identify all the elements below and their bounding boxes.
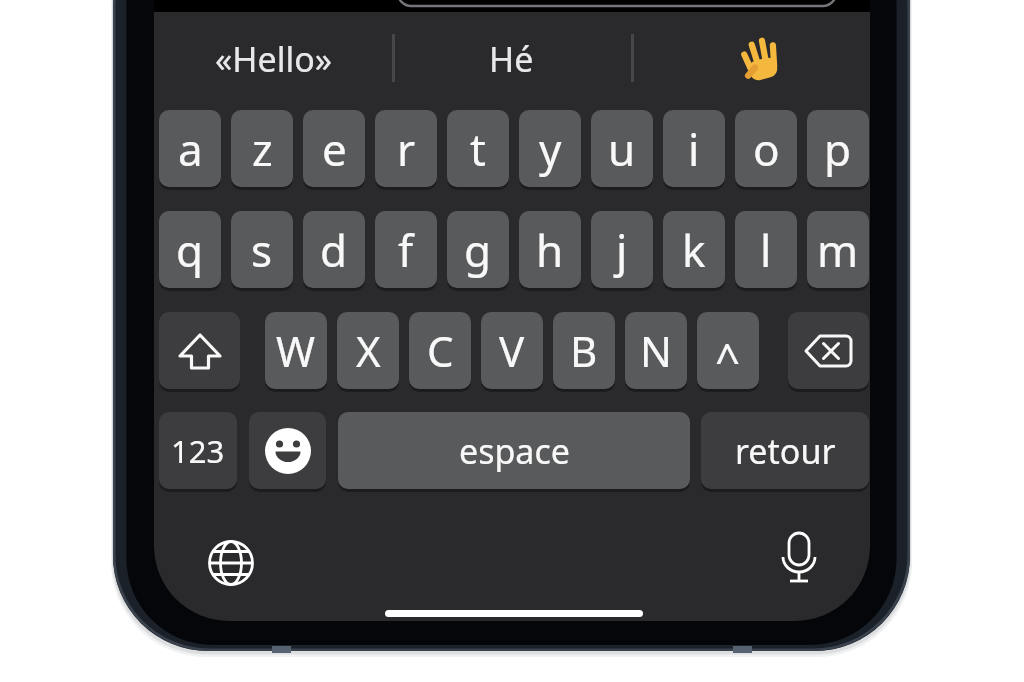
button[interactable]: t — [447, 110, 509, 187]
staticText: V — [499, 322, 525, 379]
staticText: d — [320, 220, 348, 280]
staticText: p — [824, 119, 852, 179]
staticText: retour — [735, 428, 836, 474]
staticText: h — [536, 220, 564, 280]
button[interactable]: Hé — [393, 21, 630, 97]
staticText: e — [322, 119, 347, 179]
staticText: m — [817, 220, 859, 280]
staticText: X — [356, 322, 381, 379]
staticText: W — [276, 322, 316, 379]
staticText: q — [176, 220, 204, 280]
staticText: ^ — [715, 329, 741, 389]
button[interactable]: k — [663, 211, 725, 288]
staticText: a — [178, 119, 203, 179]
button[interactable] — [788, 312, 869, 389]
staticText: i — [688, 119, 700, 179]
staticText: u — [608, 119, 636, 179]
staticText: B — [570, 322, 598, 379]
button[interactable] — [631, 21, 870, 97]
button[interactable]: i — [663, 110, 725, 187]
button[interactable]: espace — [338, 412, 690, 489]
button[interactable]: q — [159, 211, 221, 288]
button[interactable]: p — [807, 110, 869, 187]
staticText: N — [640, 322, 672, 379]
button[interactable]: g — [447, 211, 509, 288]
staticText: «Hello» — [215, 36, 333, 82]
button[interactable]: B — [553, 312, 615, 389]
button[interactable]: r — [375, 110, 437, 187]
staticText: C — [427, 322, 454, 379]
button[interactable]: X — [337, 312, 399, 389]
staticText: espace — [459, 428, 570, 474]
staticText: 123 — [171, 430, 225, 472]
staticText: g — [464, 220, 492, 280]
button[interactable]: ^ — [697, 312, 759, 389]
button[interactable]: a — [159, 110, 221, 187]
staticText: z — [252, 119, 273, 179]
button[interactable]: s — [231, 211, 293, 288]
button[interactable]: N — [625, 312, 687, 389]
button[interactable]: «Hello» — [156, 21, 391, 97]
staticText: y — [539, 119, 562, 179]
button[interactable]: V — [481, 312, 543, 389]
button[interactable]: d — [303, 211, 365, 288]
staticText: s — [251, 220, 273, 280]
button[interactable]: W — [265, 312, 327, 389]
staticText: j — [616, 220, 628, 280]
button[interactable]: 123 — [159, 412, 237, 489]
button[interactable] — [196, 528, 266, 598]
button[interactable]: retour — [701, 412, 869, 489]
button[interactable] — [249, 412, 326, 489]
button[interactable]: z — [231, 110, 293, 187]
button[interactable]: u — [591, 110, 653, 187]
staticText: Hé — [489, 36, 534, 82]
staticText: t — [470, 119, 486, 179]
button[interactable]: l — [735, 211, 797, 288]
button[interactable]: e — [303, 110, 365, 187]
staticText: k — [682, 220, 706, 280]
button[interactable]: j — [591, 211, 653, 288]
staticText: r — [397, 119, 416, 179]
button[interactable]: o — [735, 110, 797, 187]
staticText: f — [398, 220, 414, 280]
button[interactable]: y — [519, 110, 581, 187]
button[interactable] — [159, 312, 240, 389]
button[interactable]: m — [807, 211, 869, 288]
button[interactable] — [764, 526, 834, 596]
staticText: l — [760, 220, 772, 280]
button[interactable]: f — [375, 211, 437, 288]
staticText: o — [753, 119, 780, 179]
button[interactable]: C — [409, 312, 471, 389]
button[interactable]: h — [519, 211, 581, 288]
